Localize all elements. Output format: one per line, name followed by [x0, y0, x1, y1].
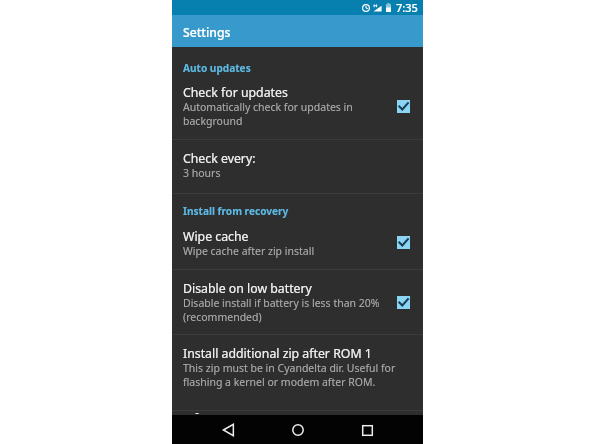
staticText: Wipe cache	[183, 228, 249, 245]
staticText: Check every:	[183, 150, 256, 167]
staticText: Install additional zip after ROM 1	[183, 345, 372, 362]
button[interactable]: Wipe cache	[172, 224, 423, 269]
staticText: This zip must be in Cyandelta dir. Usefu…	[183, 361, 428, 389]
button[interactable]: Back	[215, 417, 241, 443]
staticText: 7:35	[396, 0, 418, 15]
staticText: Auto updates	[183, 61, 251, 75]
staticText: Settings	[183, 24, 231, 41]
staticText: Automatically check for updates in backg…	[183, 100, 363, 128]
button[interactable]: Disable on low battery	[172, 276, 423, 334]
staticText: Info	[182, 411, 206, 414]
staticText: Install from recovery	[183, 204, 289, 218]
staticText: Disable on low battery	[183, 280, 312, 297]
button[interactable]: Check every:	[172, 146, 423, 192]
staticText: Check for updates	[183, 84, 288, 101]
button[interactable]: Install additional zip after ROM 1	[172, 341, 423, 410]
button[interactable]: Recent apps	[354, 417, 380, 443]
button[interactable]: Check for updates	[172, 80, 423, 139]
button[interactable]: Settings	[172, 15, 423, 47]
button[interactable]: Home	[285, 417, 311, 443]
staticText: Wipe cache after zip install	[183, 244, 315, 258]
button[interactable]: Info	[172, 411, 423, 415]
staticText: 3 hours	[183, 166, 221, 180]
staticText: Disable install if battery is less than …	[183, 296, 395, 324]
